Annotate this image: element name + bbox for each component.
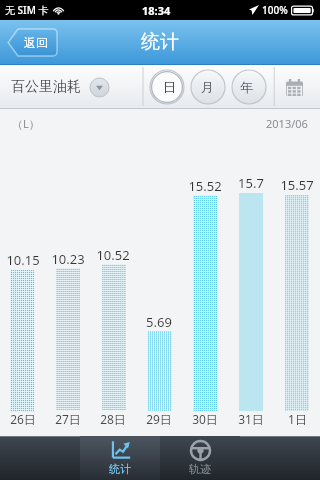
staticText: 10.23 [51, 250, 85, 268]
staticText: 轨迹 [189, 462, 211, 476]
button[interactable]: 年 [227, 70, 266, 104]
staticText: 10.15 [6, 251, 40, 269]
staticText: （L） [12, 116, 40, 131]
button[interactable]: 轨迹 [160, 436, 240, 480]
staticText: 31日 [238, 411, 264, 427]
staticText: 26日 [10, 411, 36, 427]
staticText: 百公里油耗 [11, 78, 81, 96]
staticText: 1日 [288, 411, 307, 427]
staticText: 统计 [109, 462, 131, 476]
button[interactable]: Calendar [277, 70, 311, 104]
staticText: 15.7 [238, 174, 264, 192]
staticText: 统计 [141, 30, 179, 54]
button[interactable]: 月 [188, 70, 227, 104]
staticText: 日 [163, 79, 176, 95]
staticText: 10.52 [96, 246, 130, 264]
button[interactable]: 统计 [80, 436, 160, 480]
staticText: 27日 [55, 411, 81, 427]
staticText: 28日 [100, 411, 126, 427]
staticText: 月 [201, 79, 214, 95]
staticText: 15.57 [280, 176, 314, 194]
button[interactable]: 百公里油耗 [11, 68, 133, 106]
staticText: 15.52 [188, 177, 222, 195]
button[interactable]: 返回 [7, 29, 57, 56]
staticText: 29日 [146, 411, 172, 427]
staticText: 5.69 [146, 313, 172, 331]
staticText: 100% [262, 3, 288, 17]
button[interactable]: 日 [150, 70, 188, 104]
staticText: 年 [240, 79, 253, 95]
staticText: 18:34 [142, 3, 171, 18]
staticText: 返回 [24, 35, 48, 50]
staticText: 无 SIM 卡 [5, 3, 49, 17]
staticText: 2013/06 [266, 116, 308, 131]
staticText: 30日 [192, 411, 218, 427]
